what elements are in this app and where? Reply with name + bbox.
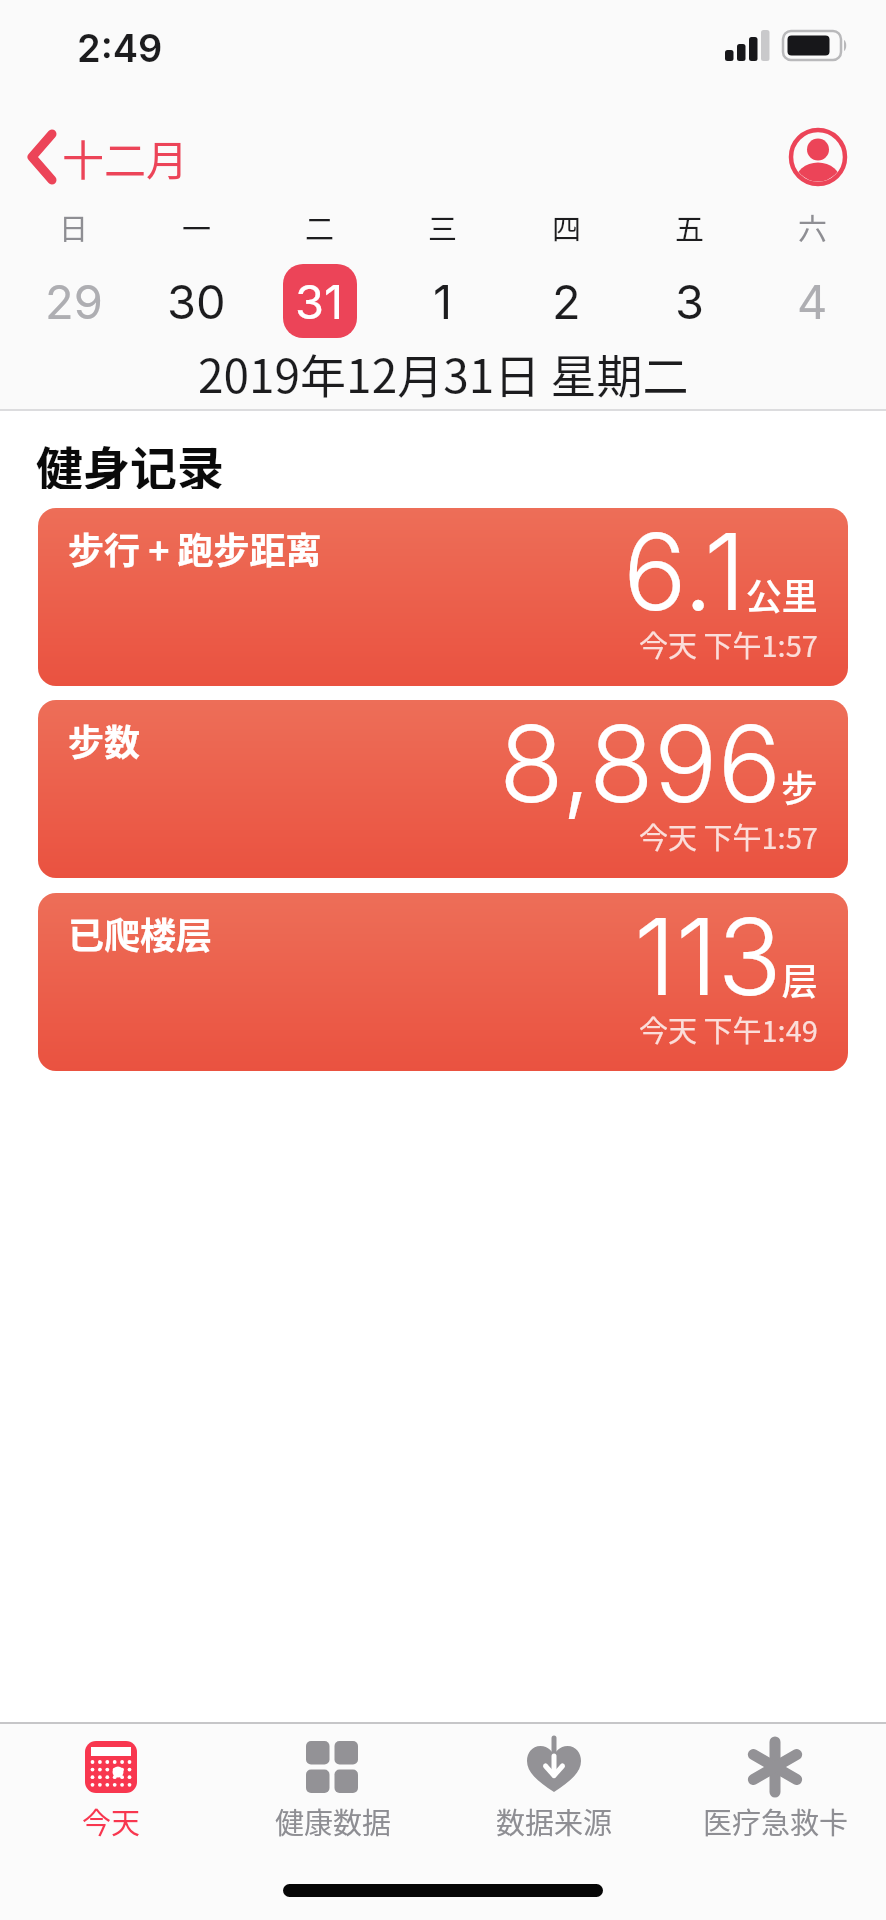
staticText: 四 xyxy=(552,206,582,246)
staticText: 30 xyxy=(167,273,226,330)
staticText: 今天 下午1:57 xyxy=(639,623,818,665)
staticText: 31 xyxy=(295,273,344,330)
staticText: 步数 xyxy=(68,714,141,764)
staticText: 4 xyxy=(797,273,828,330)
staticText: 29 xyxy=(45,273,103,330)
staticText: 2019年12月31日 星期二 xyxy=(198,340,689,402)
staticText: 二 xyxy=(305,206,335,246)
staticText: 2 xyxy=(552,273,581,330)
staticText: 数据来源 xyxy=(496,1800,613,1842)
staticText: 8,896步 xyxy=(499,699,818,819)
staticText: 一 xyxy=(182,206,212,246)
staticText: 2:49 xyxy=(77,25,163,71)
staticText: 已爬楼层 xyxy=(68,907,213,957)
staticText: 今天 下午1:49 xyxy=(639,1008,818,1050)
staticText: 六 xyxy=(798,206,828,246)
staticText: 健康数据 xyxy=(275,1800,392,1842)
staticText: 今天 下午1:57 xyxy=(639,815,818,857)
staticText: 五 xyxy=(675,206,705,246)
staticText: 健身记录 xyxy=(36,431,224,489)
staticText: 日 xyxy=(59,206,89,246)
staticText: 医疗急救卡 xyxy=(703,1800,849,1842)
staticText: 3 xyxy=(675,273,705,330)
staticText: 十二月 xyxy=(62,127,189,188)
staticText: 三 xyxy=(428,206,458,246)
staticText: 6.1公里 xyxy=(623,507,818,627)
staticText: 1 xyxy=(433,273,453,330)
staticText: 步行 + 跑步距离 xyxy=(68,522,322,572)
staticText: 今天 xyxy=(82,1800,141,1842)
staticText: 113层 xyxy=(634,892,818,1012)
